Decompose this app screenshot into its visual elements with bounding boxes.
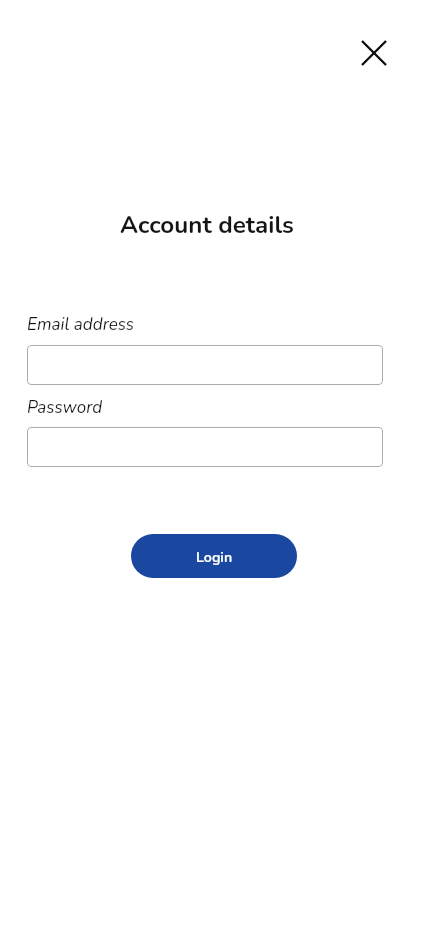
button[interactable]: [27, 427, 383, 467]
button[interactable]: [27, 345, 383, 385]
staticText: Email address: [27, 313, 135, 336]
staticText: Login: [196, 548, 233, 567]
staticText: Password: [27, 396, 103, 419]
button[interactable]: Close: [350, 29, 398, 77]
staticText: Account details: [29, 209, 385, 242]
button[interactable]: Login: [131, 534, 297, 578]
